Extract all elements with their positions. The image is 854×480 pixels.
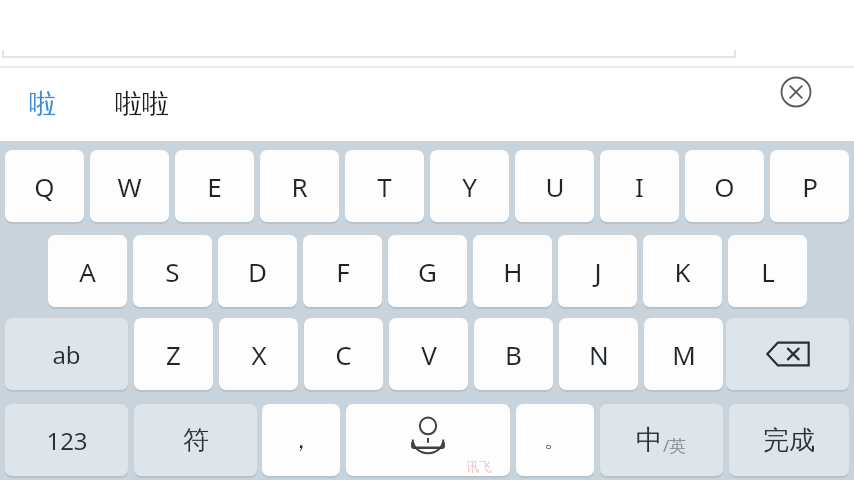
button[interactable]: 123 [5,404,128,476]
staticText: H [503,254,523,289]
staticText: R [291,169,308,204]
button[interactable]: T [345,150,424,222]
button[interactable]: W [90,150,169,222]
button[interactable]: E [175,150,254,222]
staticText: G [418,254,437,289]
staticText: 啦 [29,87,56,121]
staticText: F [336,254,350,289]
staticText: J [594,254,602,289]
button[interactable]: Close keyboard [772,68,820,116]
staticText: W [117,169,142,204]
staticText: O [714,169,735,204]
staticText: P [802,169,818,204]
button[interactable]: S [133,235,212,307]
staticText: /英 [663,434,687,457]
staticText: 中 [636,423,663,457]
button[interactable]: U [515,150,594,222]
button[interactable]: 符 [134,404,257,476]
button[interactable]: C [304,318,383,390]
button[interactable]: V [389,318,468,390]
staticText: X [251,337,267,372]
staticText: Z [166,337,181,372]
button[interactable]: 完成 [729,404,849,476]
button[interactable]: Space, voice input [346,404,510,476]
button[interactable]: K [643,235,722,307]
staticText: 。 [544,426,566,454]
button[interactable]: 啦啦 [98,68,186,140]
staticText: 符 [183,424,209,457]
staticText: V [421,337,437,372]
button[interactable]: Switch Chinese English [600,404,723,476]
button[interactable]: O [685,150,764,222]
staticText: 啦啦 [115,87,169,121]
staticText: ab [52,338,81,371]
staticText: B [505,337,522,372]
button[interactable]: H [473,235,552,307]
button[interactable]: 。 [516,404,594,476]
button[interactable]: Y [430,150,509,222]
button[interactable]: J [558,235,637,307]
button[interactable]: ab [5,318,128,390]
button[interactable]: F [303,235,382,307]
button[interactable]: R [260,150,339,222]
staticText: Y [462,169,477,204]
staticText: S [165,254,180,289]
staticText: T [377,169,392,204]
staticText: 完成 [763,424,815,457]
button[interactable]: Backspace [726,318,849,390]
staticText: Q [34,169,55,204]
staticText: 讯飞 [466,458,492,474]
button[interactable]: ， [262,404,340,476]
staticText: E [207,169,222,204]
staticText: U [545,169,565,204]
staticText: N [589,337,609,372]
staticText: C [335,337,352,372]
staticText: M [672,337,696,372]
staticText: L [761,254,775,289]
button[interactable]: X [219,318,298,390]
staticText: A [79,254,96,289]
button[interactable]: N [559,318,638,390]
button[interactable]: L [728,235,807,307]
button[interactable]: M [644,318,723,390]
staticText: D [248,254,267,289]
button[interactable]: P [770,150,849,222]
staticText: 123 [46,424,88,457]
button[interactable]: Z [134,318,213,390]
button[interactable]: I [600,150,679,222]
button[interactable]: A [48,235,127,307]
button[interactable]: 啦 [14,68,70,140]
staticText: I [635,169,644,204]
button[interactable]: D [218,235,297,307]
staticText: ， [289,425,313,455]
staticText: K [674,254,691,289]
button[interactable]: B [474,318,553,390]
button[interactable]: G [388,235,467,307]
button[interactable]: Q [5,150,84,222]
